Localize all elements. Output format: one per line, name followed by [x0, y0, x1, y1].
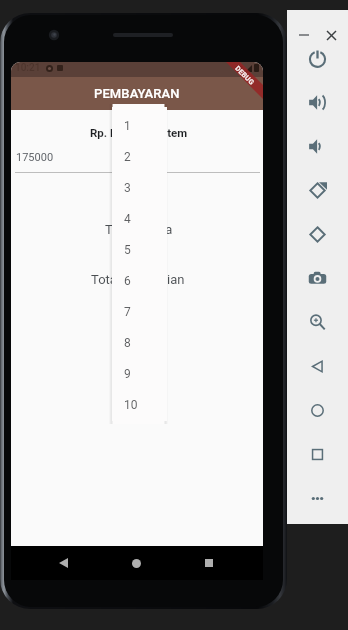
button[interactable]: Screenshot [296, 256, 339, 300]
button[interactable]: Overview [296, 432, 339, 476]
staticText: 4 [124, 212, 131, 226]
staticText: 1 [124, 119, 131, 133]
button[interactable]: Home [123, 550, 149, 576]
staticText: PEMBAYARAN [94, 86, 180, 101]
staticText: 9 [124, 367, 131, 381]
staticText: 2 [124, 150, 131, 164]
button[interactable]: 2 [112, 141, 167, 172]
button[interactable]: 4 [112, 203, 167, 234]
button[interactable]: 1 [112, 110, 167, 141]
button[interactable]: 9 [112, 358, 167, 389]
button[interactable]: Recents [196, 550, 222, 576]
staticText: Rp. Harga per Item [90, 126, 188, 139]
button[interactable]: 7 [112, 296, 167, 327]
staticText: 5 [124, 243, 131, 257]
button[interactable]: Rotate right [296, 212, 339, 256]
staticText: 10:21 [15, 62, 41, 74]
button[interactable]: Power [296, 36, 339, 80]
button[interactable]: Home [296, 388, 339, 432]
button[interactable]: Back [296, 344, 339, 388]
button[interactable]: 6 [112, 265, 167, 296]
button[interactable]: Minimize [295, 26, 313, 44]
staticText: 7 [124, 305, 131, 319]
button[interactable]: Zoom [296, 300, 339, 344]
staticText: DEBUG [233, 64, 256, 87]
staticText: 8 [124, 336, 131, 350]
button[interactable]: Rotate left [296, 168, 339, 212]
button[interactable]: Close [322, 26, 340, 44]
staticText: 6 [124, 274, 131, 288]
button[interactable]: Back [50, 550, 76, 576]
button[interactable]: 8 [112, 327, 167, 358]
staticText: Total Pembelian [91, 272, 185, 287]
staticText: Total Harga [105, 222, 173, 237]
staticText: 3 [124, 181, 131, 195]
button[interactable]: Volume up [296, 80, 339, 124]
button[interactable]: Volume down [296, 124, 339, 168]
button[interactable]: 10 [112, 389, 167, 420]
button[interactable]: 3 [112, 172, 167, 203]
staticText: 175000 [16, 151, 54, 164]
staticText: 10 [124, 398, 138, 412]
button[interactable]: 5 [112, 234, 167, 265]
button[interactable]: More [296, 476, 339, 520]
